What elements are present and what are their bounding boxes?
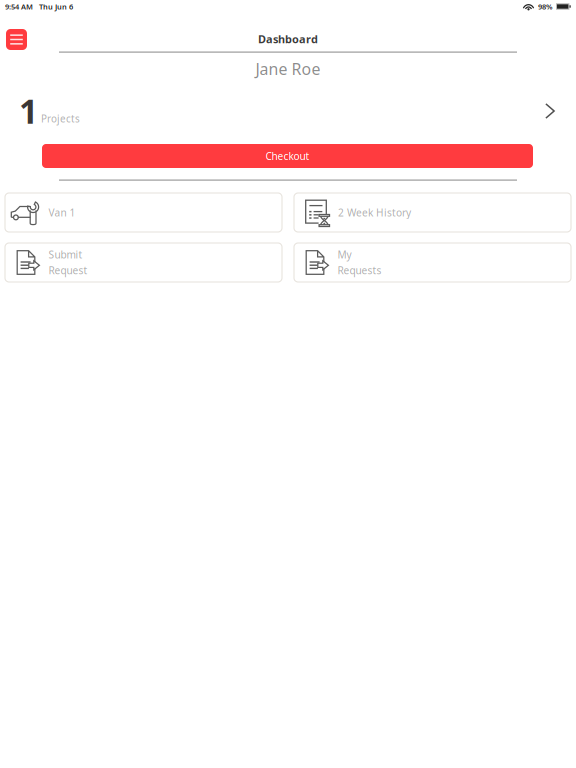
staticText: Dashboard [258, 31, 318, 46]
button[interactable]: Submit [5, 243, 282, 282]
button[interactable]: Checkout [42, 144, 533, 168]
staticText: Projects [41, 112, 80, 125]
button[interactable]: 2 Week History [294, 193, 571, 232]
staticText: Van 1 [48, 206, 75, 219]
staticText: Thu Jun 6 [39, 1, 73, 12]
button[interactable]: View projects [538, 96, 562, 126]
staticText: Jane Roe [255, 58, 320, 80]
staticText: Checkout [265, 149, 309, 163]
staticText: Requests [337, 263, 381, 277]
staticText: 1 [19, 88, 38, 133]
staticText: 9:54 AM [5, 1, 33, 12]
button[interactable]: My [294, 243, 571, 282]
staticText: Request [48, 263, 87, 277]
staticText: Submit [48, 248, 82, 261]
staticText: 98% [538, 1, 553, 12]
staticText: 2 Week History [338, 206, 411, 219]
button[interactable]: Van 1 [5, 193, 282, 232]
button[interactable]: Menu [6, 29, 27, 50]
staticText: My [337, 248, 351, 261]
